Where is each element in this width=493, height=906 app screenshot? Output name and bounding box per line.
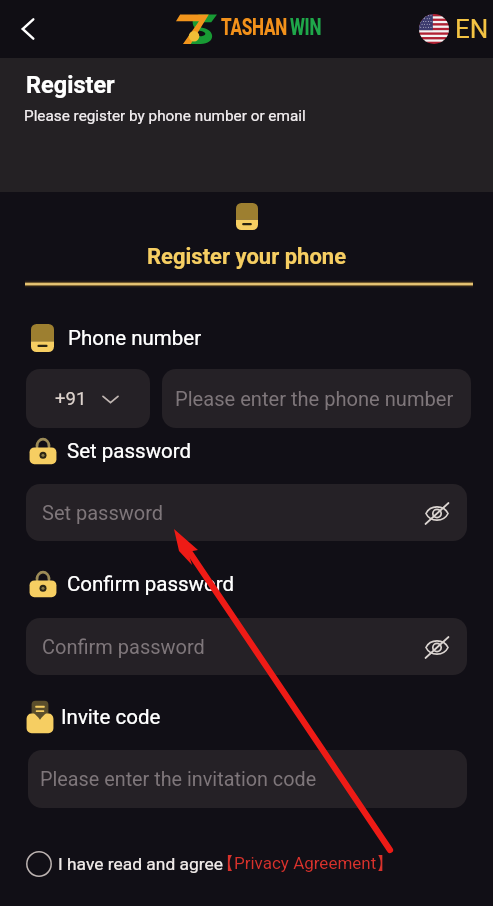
staticText: Please enter the invitation code [40,768,317,791]
button[interactable]: Set password [26,484,467,541]
staticText: WIN [290,14,322,41]
button[interactable]: +91 [26,369,150,428]
staticText: Please register by phone number or email [24,107,306,125]
button[interactable]: EN [419,14,489,44]
staticText: Register [26,71,115,99]
button[interactable]: Show password [423,499,451,527]
staticText: Confirm password [42,635,205,658]
staticText: TASHAN [221,14,288,41]
staticText: Set password [67,439,192,463]
staticText: I have read and agree [58,854,223,874]
staticText: Confirm password [67,572,234,596]
button[interactable]: Please enter the phone number [162,369,471,428]
staticText: 【Privacy Agreement】 [217,853,394,874]
button[interactable]: Show password [423,633,451,661]
staticText: Set password [42,501,164,524]
button[interactable]: 【Privacy Agreement】 [217,853,394,874]
staticText: Invite code [61,705,161,729]
staticText: EN [455,14,489,44]
button[interactable]: Agree to privacy agreement [25,850,52,877]
button[interactable]: Back [8,9,48,49]
button[interactable]: Please enter the invitation code [28,750,467,808]
staticText: Register your phone [0,244,493,270]
staticText: +91 [55,388,87,410]
button[interactable]: Confirm password [26,618,467,675]
staticText: Phone number [68,326,202,350]
staticText: Please enter the phone number [175,387,454,411]
